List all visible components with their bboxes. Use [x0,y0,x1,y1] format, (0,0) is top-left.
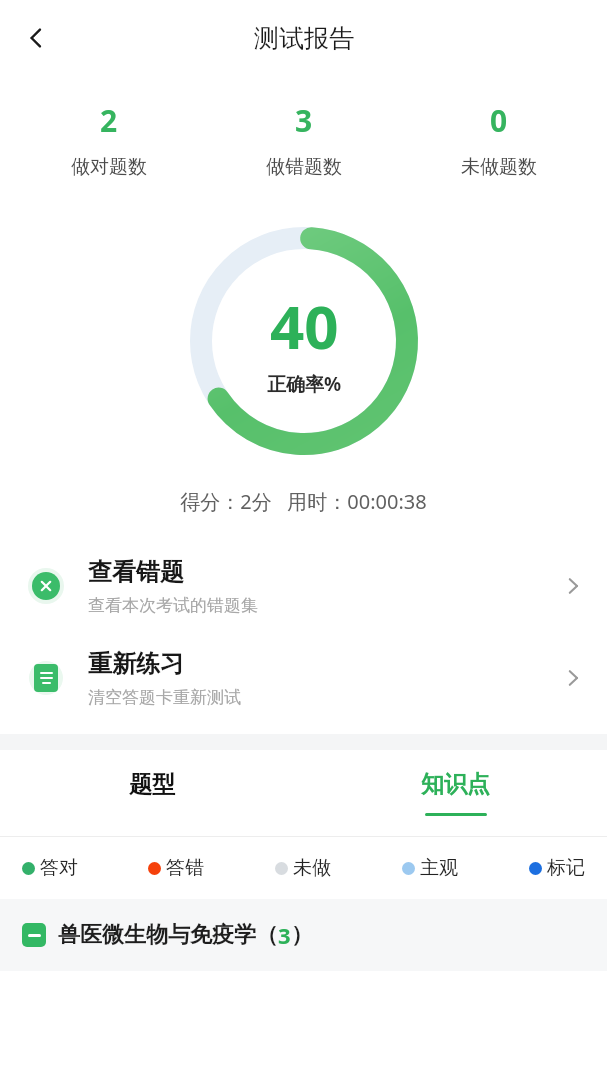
staticText: ） [291,921,313,949]
staticText: 重新练习 [88,649,184,679]
staticText: 未做 [293,856,331,880]
button[interactable]: 兽医微生物与免疫学（ [0,899,607,971]
staticText: 40 [270,285,339,367]
button[interactable]: 查看错题 [0,540,607,632]
button[interactable]: 重新练习 [0,632,607,724]
staticText: 知识点 [421,770,490,799]
staticText: 查看错题 [88,557,184,587]
staticText: 3 [295,100,313,141]
staticText: 得分：2分 用时：00:00:38 [180,488,427,515]
button[interactable]: Back [10,12,62,64]
staticText: 答错 [166,856,204,880]
staticText: 兽医微生物与免疫学（ [58,921,278,949]
staticText: 做对题数 [71,155,147,179]
staticText: 标记 [547,856,585,880]
staticText: 答对 [40,856,78,880]
button[interactable]: 2 [24,76,193,203]
button[interactable]: 0 [415,76,583,203]
staticText: 未做题数 [461,155,537,179]
button[interactable]: 题型 [0,750,303,836]
staticText: 做错题数 [266,155,342,179]
staticText: 2 [100,100,118,141]
staticText: 题型 [129,770,175,799]
staticText: 3 [278,920,291,950]
button[interactable]: 知识点 [303,750,607,836]
staticText: 清空答题卡重新测试 [88,687,241,708]
staticText: 主观 [420,856,458,880]
staticText: 0 [490,100,508,141]
button[interactable]: 3 [220,76,388,203]
staticText: 查看本次考试的错题集 [88,595,258,616]
staticText: 测试报告 [254,23,354,54]
staticText: 正确率% [267,371,342,397]
